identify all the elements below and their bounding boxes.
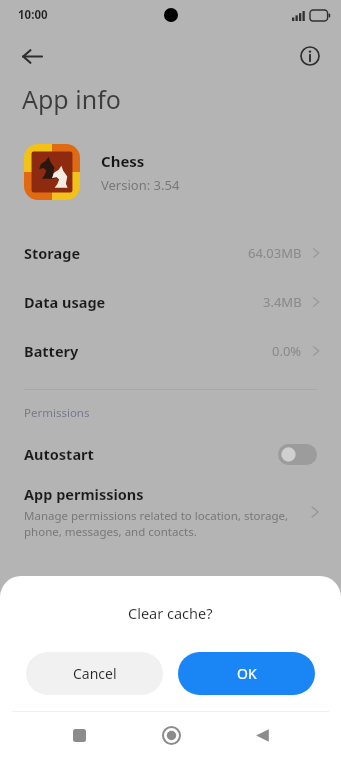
button[interactable]: Battery xyxy=(0,326,341,375)
button[interactable]: Cancel xyxy=(26,652,163,695)
staticText: 0.0% xyxy=(272,342,302,360)
button[interactable]: Autostart xyxy=(0,437,341,471)
staticText: Autostart xyxy=(24,444,94,464)
staticText: Manage permissions related to location, … xyxy=(24,508,289,539)
staticText: Cancel xyxy=(73,664,117,683)
staticText: App info xyxy=(22,82,121,116)
button[interactable]: Data usage xyxy=(0,277,341,326)
button[interactable]: Home xyxy=(154,718,188,752)
button[interactable]: OK xyxy=(178,652,315,695)
button[interactable]: App details xyxy=(290,36,330,76)
button[interactable]: Back xyxy=(245,718,279,752)
staticText: 3.4MB xyxy=(263,293,302,311)
staticText: Version: 3.54 xyxy=(101,176,180,194)
staticText: OK xyxy=(237,664,257,683)
button[interactable]: Autostart toggle xyxy=(278,444,317,465)
staticText: Permissions xyxy=(24,405,90,421)
staticText: Battery xyxy=(24,341,79,361)
button[interactable]: Recent apps xyxy=(62,718,96,752)
button[interactable]: Back xyxy=(12,36,52,76)
button[interactable]: App permissions xyxy=(0,484,341,539)
staticText: Clear cache? xyxy=(128,603,213,623)
staticText: Data usage xyxy=(24,292,106,312)
staticText: Chess xyxy=(101,151,145,171)
staticText: App permissions xyxy=(24,484,144,504)
staticText: Storage xyxy=(24,243,81,263)
staticText: 10:00 xyxy=(18,7,48,23)
button[interactable]: Storage xyxy=(0,228,341,277)
staticText: 64.03MB xyxy=(248,244,302,262)
